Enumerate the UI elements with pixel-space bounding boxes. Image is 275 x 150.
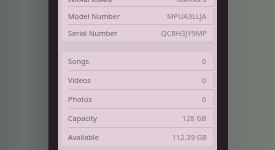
staticText: iPhone 8 <box>177 0 207 2</box>
button[interactable]: Serial Number <box>62 25 213 41</box>
button[interactable]: Available <box>62 128 213 146</box>
staticText: Serial Number <box>68 28 118 38</box>
staticText: Songs <box>68 56 89 66</box>
staticText: 0 <box>202 94 207 104</box>
button[interactable]: Model Name <box>62 0 213 6</box>
staticText: 128 GB <box>182 113 207 123</box>
staticText: Videos <box>68 75 91 85</box>
staticText: QCRH3JY9MP <box>161 28 207 38</box>
staticText: MPUA3LLJA <box>167 11 207 21</box>
staticText: Model Number <box>68 11 120 21</box>
staticText: Capacity <box>68 113 98 123</box>
button[interactable]: Photos <box>62 90 213 109</box>
staticText: Model Name <box>68 0 112 2</box>
staticText: 112.39 GB <box>172 132 207 142</box>
staticText: 0 <box>202 75 207 85</box>
button[interactable]: Capacity <box>62 109 213 128</box>
staticText: Available <box>68 132 99 142</box>
button[interactable]: Videos <box>62 71 213 90</box>
staticText: 0 <box>202 56 207 66</box>
staticText: Photos <box>68 94 92 104</box>
button[interactable]: Songs <box>62 52 213 71</box>
button[interactable]: Model Number <box>62 7 213 25</box>
